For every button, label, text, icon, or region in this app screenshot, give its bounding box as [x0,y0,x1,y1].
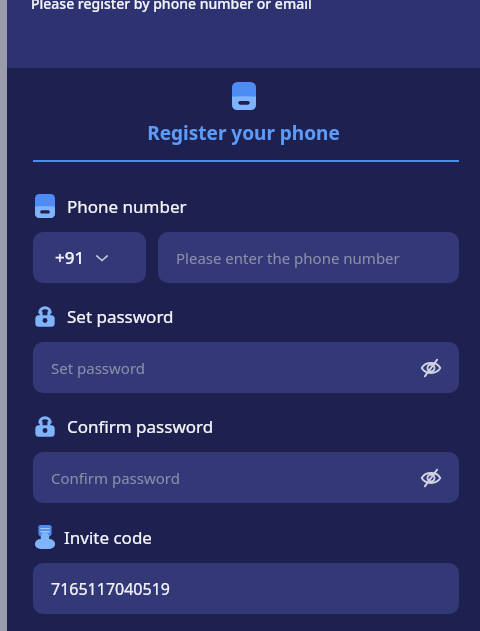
button[interactable]: Show password [417,464,445,492]
staticText: +91 [55,246,85,269]
button[interactable]: Set password [33,342,459,393]
button[interactable]: +91 [33,232,146,283]
staticText: Please enter the phone number [176,248,400,268]
staticText: Set password [67,305,174,328]
button[interactable]: Confirm password [33,452,459,503]
staticText: Set password [51,358,146,378]
staticText: Please register by phone number or email [31,0,312,13]
staticText: 7165117040519 [51,578,170,600]
staticText: Confirm password [67,415,214,438]
staticText: Phone number [67,195,187,218]
button[interactable]: 7165117040519 [33,563,459,614]
button[interactable]: Please enter the phone number [158,232,459,283]
button[interactable]: Show password [417,354,445,382]
staticText: Register your phone [7,120,480,146]
staticText: Confirm password [51,468,180,488]
staticText: Invite code [64,526,152,549]
